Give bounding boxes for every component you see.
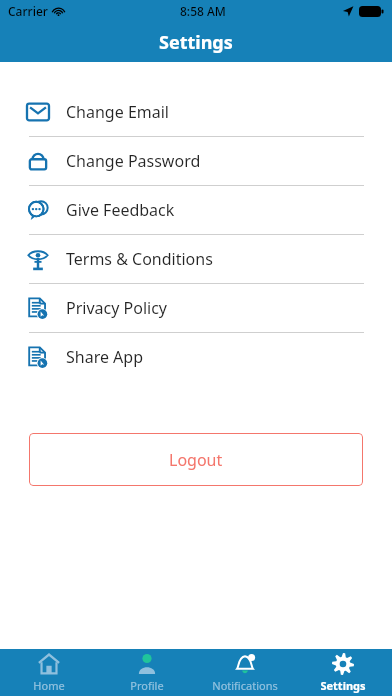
staticText: Share App — [66, 346, 144, 368]
staticText: Privacy Policy — [66, 297, 167, 319]
button[interactable]: Privacy Policy — [0, 284, 392, 333]
staticText: Settings — [320, 678, 366, 693]
button[interactable]: Settings — [294, 649, 392, 696]
button[interactable]: Notifications — [196, 649, 294, 696]
staticText: Notifications — [212, 678, 278, 693]
staticText: Terms & Conditions — [66, 248, 213, 270]
staticText: 8:58 AM — [180, 3, 226, 19]
staticText: Logout — [169, 449, 223, 471]
button[interactable]: Change Password — [0, 137, 392, 186]
staticText: Give Feedback — [66, 199, 175, 221]
staticText: Change Password — [66, 150, 201, 172]
button[interactable]: Profile — [98, 649, 196, 696]
button[interactable]: Home — [0, 649, 98, 696]
button[interactable]: Share App — [0, 333, 392, 381]
staticText: Change Email — [66, 101, 169, 123]
button[interactable]: Terms & Conditions — [0, 235, 392, 284]
staticText: Settings — [159, 30, 233, 55]
button[interactable]: Change Email — [0, 88, 392, 137]
staticText: Profile — [130, 678, 164, 693]
button[interactable]: Logout — [29, 433, 363, 486]
button[interactable]: Give Feedback — [0, 186, 392, 235]
staticText: Carrier — [8, 3, 48, 19]
staticText: Home — [33, 678, 65, 693]
